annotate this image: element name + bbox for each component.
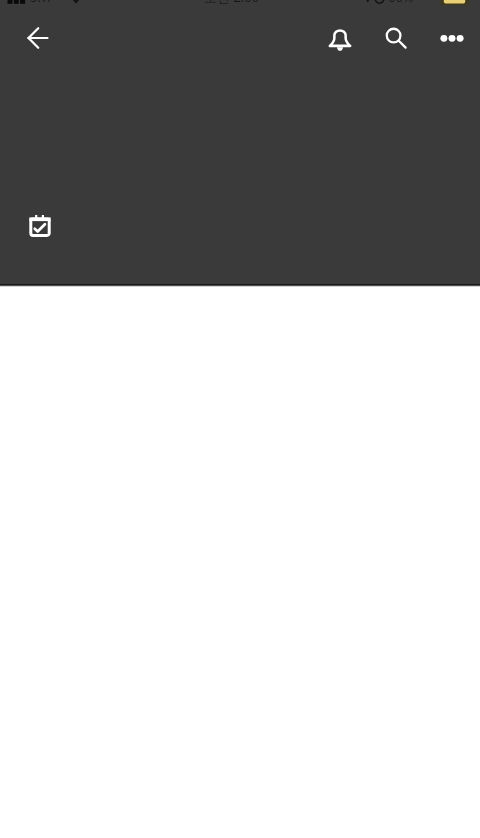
button[interactable]: Notifications bbox=[316, 16, 364, 64]
button[interactable]: Search bbox=[372, 14, 420, 62]
button[interactable]: Event date bbox=[15, 201, 63, 249]
button[interactable]: Back bbox=[14, 14, 62, 62]
button[interactable]: More options bbox=[428, 14, 476, 62]
